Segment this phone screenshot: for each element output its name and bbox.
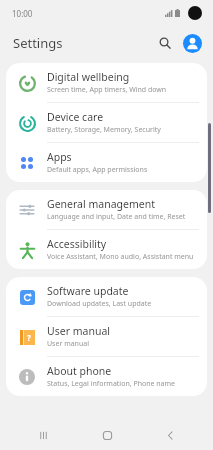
staticText: Accessibility bbox=[47, 237, 107, 251]
button[interactable]: Account bbox=[180, 31, 204, 55]
staticText: User manual bbox=[47, 324, 110, 338]
button[interactable]: Device care bbox=[6, 103, 207, 142]
button[interactable]: Apps bbox=[6, 143, 207, 182]
button[interactable]: Software update bbox=[6, 277, 207, 316]
staticText: Software update bbox=[47, 284, 129, 298]
staticText: Language and input, Date and time, Reset bbox=[47, 212, 186, 222]
staticText: Battery, Storage, Memory, Security bbox=[47, 125, 161, 135]
button[interactable]: Home bbox=[86, 421, 128, 449]
staticText: Default apps, App permissions bbox=[47, 165, 148, 175]
button[interactable]: General management bbox=[6, 190, 207, 229]
button[interactable]: Digital wellbeing bbox=[6, 63, 207, 102]
staticText: Device care bbox=[47, 110, 104, 124]
staticText: Status, Legal information, Phone name bbox=[47, 379, 176, 389]
staticText: General management bbox=[47, 197, 155, 211]
staticText: ? bbox=[27, 332, 31, 343]
button[interactable]: ? bbox=[6, 317, 207, 356]
staticText: Digital wellbeing bbox=[47, 70, 130, 84]
button[interactable]: About phone bbox=[6, 357, 207, 396]
staticText: Download updates, Last update bbox=[47, 299, 152, 309]
button[interactable]: Back bbox=[149, 421, 191, 449]
staticText: Apps bbox=[47, 150, 72, 164]
staticText: Screen time, App timers, Wind down bbox=[47, 85, 167, 95]
staticText: 10:00 bbox=[12, 8, 33, 19]
button[interactable]: Recent apps bbox=[22, 421, 64, 449]
staticText: User manual bbox=[47, 339, 89, 349]
staticText: Voice Assistant, Mono audio, Assistant m… bbox=[47, 252, 194, 262]
button[interactable]: Search bbox=[153, 31, 177, 55]
button[interactable]: Accessibility bbox=[6, 230, 207, 269]
staticText: Settings bbox=[13, 34, 63, 52]
staticText: About phone bbox=[47, 364, 112, 378]
